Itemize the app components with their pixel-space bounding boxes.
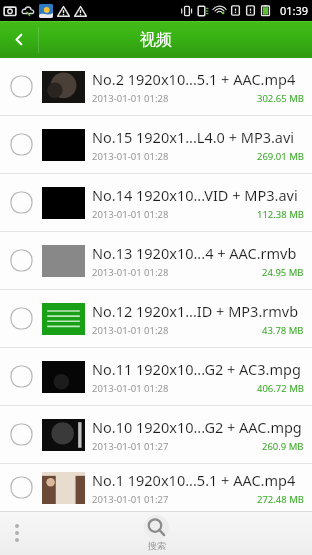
staticText: 01:39 <box>280 3 309 18</box>
staticText: No.14 1920x10...VID + MP3.avi <box>92 185 298 205</box>
button[interactable]: No.12 1920x1...ID + MP3.rmvb <box>0 290 312 347</box>
staticText: 2013-01-01 01:27 <box>92 493 169 506</box>
staticText: 302.65 MB <box>257 92 304 105</box>
staticText: 2013-01-01 01:28 <box>92 150 169 163</box>
staticText: 24.95 MB <box>262 266 304 279</box>
staticText: No.1 1920x10...5.1 + AAC.mp4 <box>92 470 296 490</box>
staticText: 43.78 MB <box>262 324 304 337</box>
staticText: No.15 1920x1...L4.0 + MP3.avi <box>92 127 295 147</box>
staticText: 112.38 MB <box>257 208 304 221</box>
staticText: No.12 1920x1...ID + MP3.rmvb <box>92 301 299 321</box>
staticText: 2013-01-01 01:27 <box>92 440 169 453</box>
staticText: 搜索 <box>148 540 166 551</box>
staticText: 2013-01-01 01:28 <box>92 324 169 337</box>
button[interactable]: No.11 1920x10...G2 + AC3.mpg <box>0 348 312 405</box>
button[interactable]: More options <box>0 511 34 555</box>
staticText: 260.9 MB <box>262 440 304 453</box>
staticText: No.10 1920x10...G2 + AAC.mpg <box>92 417 302 437</box>
button[interactable]: 搜索 <box>144 515 169 551</box>
button[interactable]: No.1 1920x10...5.1 + AAC.mp4 <box>0 464 312 511</box>
staticText: 272.48 MB <box>257 493 304 506</box>
staticText: No.11 1920x10...G2 + AC3.mpg <box>92 359 301 379</box>
staticText: 406.72 MB <box>257 382 304 395</box>
staticText: No.13 1920x10...4 + AAC.rmvb <box>92 243 297 263</box>
button[interactable]: No.13 1920x10...4 + AAC.rmvb <box>0 232 312 289</box>
button[interactable]: No.2 1920x10...5.1 + AAC.mp4 <box>0 58 312 115</box>
button[interactable]: Back <box>0 21 38 58</box>
button[interactable]: No.10 1920x10...G2 + AAC.mpg <box>0 406 312 463</box>
staticText: 2013-01-01 01:28 <box>92 266 169 279</box>
button[interactable]: No.14 1920x10...VID + MP3.avi <box>0 174 312 231</box>
button[interactable]: No.15 1920x1...L4.0 + MP3.avi <box>0 116 312 173</box>
staticText: 视频 <box>140 30 172 50</box>
staticText: 2013-01-01 01:28 <box>92 92 169 105</box>
staticText: 2013-01-01 01:28 <box>92 382 169 395</box>
staticText: 2013-01-01 01:28 <box>92 208 169 221</box>
staticText: 269.01 MB <box>257 150 304 163</box>
staticText: No.2 1920x10...5.1 + AAC.mp4 <box>92 69 296 89</box>
